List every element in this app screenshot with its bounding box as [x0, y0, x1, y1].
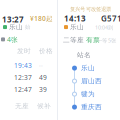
staticText: 乐山 — [9, 23, 23, 31]
staticText: 二等座 — [63, 36, 84, 44]
staticText: 站名 — [77, 51, 91, 59]
staticText: 10:04到 — [95, 24, 113, 31]
button[interactable]: 13:27 — [0, 0, 57, 120]
staticText: 价格 — [39, 47, 53, 55]
staticText: 一等 5张 — [97, 37, 116, 44]
staticText: 4张 — [7, 35, 18, 44]
staticText: ¥180起 — [30, 14, 53, 23]
staticText: 可改签退票 — [86, 6, 111, 13]
staticText: 始 — [25, 24, 30, 30]
staticText: 有票 — [86, 36, 100, 44]
staticText: 复兴号 — [70, 6, 85, 13]
staticText: G5710 — [101, 13, 120, 24]
staticText: 12:37 — [14, 73, 32, 82]
staticText: -- — [39, 62, 43, 69]
staticText: 49 — [39, 73, 47, 82]
staticText: 眉山西 — [81, 77, 102, 85]
staticText: 发时 — [17, 47, 31, 55]
staticText: 重庆西 — [81, 103, 102, 111]
staticText: 无座 — [15, 102, 29, 110]
staticText: 39 — [39, 85, 47, 94]
staticText: 犍为 — [81, 90, 95, 98]
staticText: 12:47 — [14, 85, 32, 94]
staticText: 乐山 — [81, 64, 95, 72]
staticText: 14:13 — [64, 13, 86, 24]
staticText: 13:27 — [2, 14, 24, 25]
staticText: 乐山 — [70, 23, 84, 31]
staticText: 19:43 — [14, 61, 32, 70]
button[interactable]: 复兴号 — [58, 0, 120, 120]
staticText: 候补 — [37, 102, 51, 110]
